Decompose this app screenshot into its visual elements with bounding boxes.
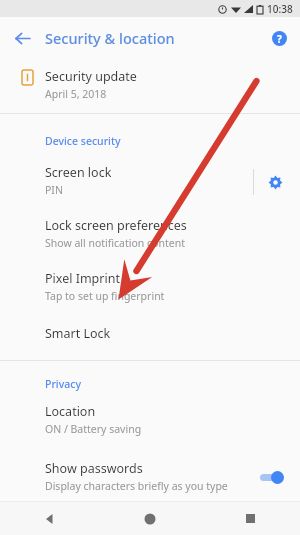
button[interactable]: Recent apps [200,502,300,535]
staticText: 10:38 [267,2,293,16]
staticText: Location [45,403,96,420]
staticText: Pixel Imprint [45,270,120,287]
staticText: Privacy [45,377,81,391]
staticText: Display characters briefly as you type [45,479,228,493]
staticText: Lock screen preferences [45,217,187,234]
staticText: April 5, 2018 [45,87,107,101]
button[interactable]: Back [0,502,100,535]
button[interactable]: Show passwords [0,438,300,501]
button[interactable]: Screen lock settings [260,167,290,197]
button[interactable]: Home [100,502,200,535]
staticText: PIN [45,183,63,197]
staticText: ON / Battery saving [45,422,142,436]
button[interactable]: Pixel Imprint [0,252,300,305]
button[interactable]: Lock screen preferences [0,201,300,252]
button[interactable]: Help [266,25,292,51]
button[interactable]: Security update [0,58,300,113]
staticText: Security & location [45,28,175,48]
staticText: Show all notification content [45,236,185,250]
staticText: Smart Lock [45,325,111,342]
staticText: ? [277,32,282,46]
staticText: Tap to set up fingerprint [45,289,165,303]
button[interactable]: Back [8,24,36,52]
button[interactable]: Smart Lock [0,305,300,360]
button[interactable]: Location [0,391,300,438]
staticText: Show passwords [45,460,143,477]
staticText: Security update [45,68,137,85]
staticText: Screen lock [45,164,112,181]
staticText: Device security [45,134,121,148]
button[interactable]: Screen lock [0,162,253,201]
